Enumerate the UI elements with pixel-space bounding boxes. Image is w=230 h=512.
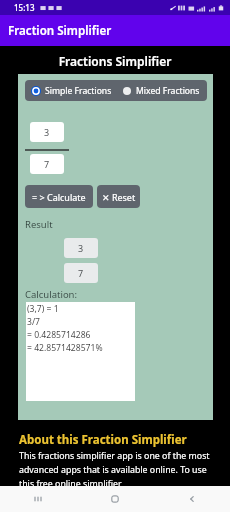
- staticText: Mixed Fractions: [136, 85, 200, 97]
- button[interactable]: ✕ Reset: [97, 185, 140, 208]
- staticText: 7: [78, 267, 84, 279]
- staticText: 15:13: [14, 2, 35, 13]
- button[interactable]: Recent apps: [0, 486, 76, 512]
- staticText: Calculation:: [25, 288, 78, 301]
- staticText: Fraction Simplifier: [8, 23, 112, 39]
- staticText: 3: [78, 242, 84, 254]
- staticText: Simple Fractions: [45, 85, 112, 97]
- button[interactable]: Simple Fractions: [25, 80, 116, 101]
- staticText: About this Fraction Simplifier: [19, 432, 187, 448]
- staticText: ✕ Reset: [102, 191, 136, 203]
- button[interactable]: = > Calculate: [25, 185, 93, 208]
- button[interactable]: Home: [76, 486, 153, 512]
- staticText: (3,7) = 1 3/7 = 0.4285714286 = 42.857142…: [27, 303, 103, 354]
- staticText: Fractions Simplifier: [0, 53, 230, 69]
- staticText: Result: [25, 218, 53, 231]
- staticText: 7: [44, 158, 50, 170]
- staticText: = > Calculate: [32, 191, 86, 203]
- staticText: This fractions simplifier app is one of …: [19, 450, 214, 490]
- button[interactable]: Mixed Fractions: [116, 80, 207, 101]
- staticText: 3: [44, 126, 50, 138]
- button[interactable]: Back: [153, 486, 230, 512]
